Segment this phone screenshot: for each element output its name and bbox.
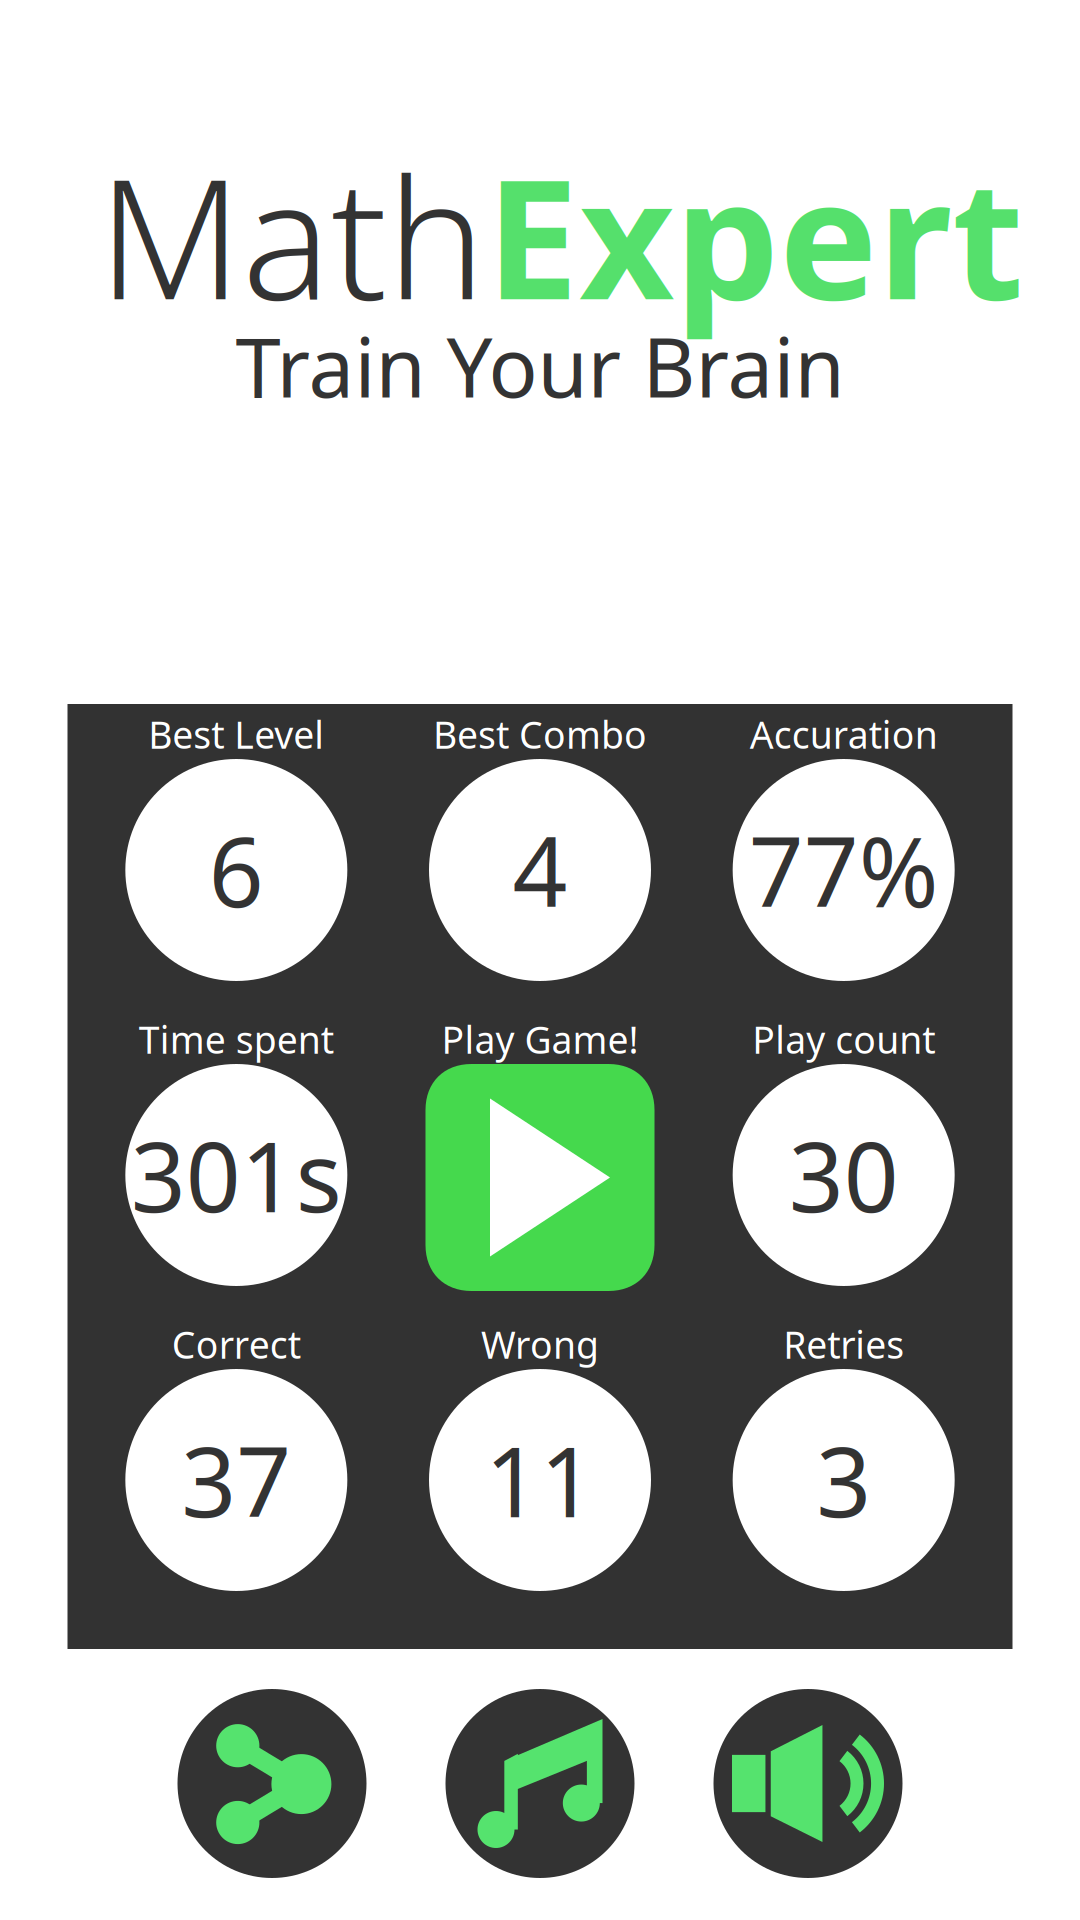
staticText: 30 [789, 1111, 899, 1239]
staticText: 11 [485, 1416, 595, 1544]
staticText: Play count [752, 1014, 935, 1064]
staticText: 37 [181, 1416, 291, 1544]
button[interactable]: Share [177, 1689, 366, 1878]
staticText: 301s [131, 1111, 342, 1239]
staticText: Accuration [750, 709, 938, 759]
staticText: 3 [816, 1416, 871, 1544]
staticText: Train Your Brain [235, 312, 844, 420]
staticText: Wrong [481, 1319, 599, 1369]
staticText: Time spent [139, 1014, 334, 1064]
button[interactable]: Music [445, 1689, 634, 1878]
staticText: Best Combo [433, 709, 647, 759]
staticText: Expert [486, 125, 1024, 345]
button[interactable]: Play Game [425, 1064, 654, 1291]
staticText: 6 [209, 806, 264, 934]
staticText: Math [98, 125, 486, 345]
button[interactable]: Sound [713, 1689, 902, 1878]
staticText: Best Level [148, 709, 324, 759]
staticText: Play Game! [441, 1014, 638, 1064]
staticText: 4 [512, 806, 567, 934]
staticText: Correct [172, 1319, 301, 1369]
staticText: 77% [749, 806, 939, 934]
staticText: Retries [783, 1319, 904, 1369]
